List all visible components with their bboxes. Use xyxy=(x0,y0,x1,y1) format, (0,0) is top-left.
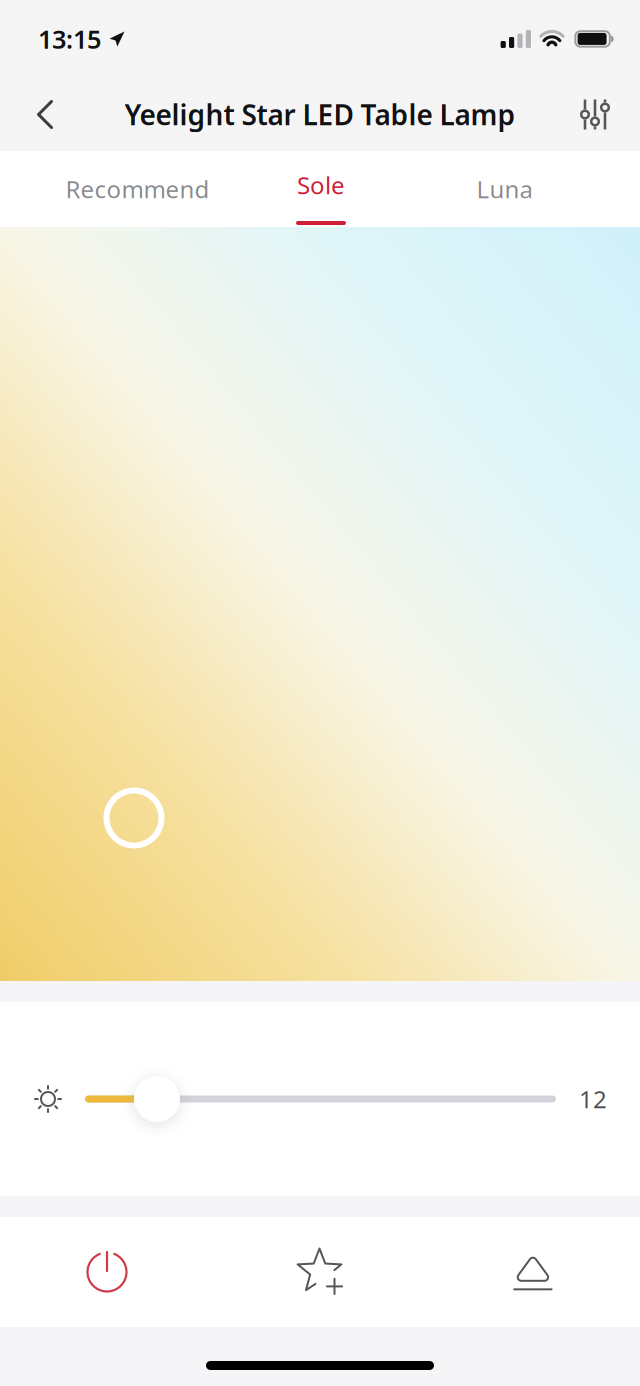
staticText: Luna xyxy=(476,173,532,205)
staticText: Yeelight Star LED Table Lamp xyxy=(124,96,515,133)
button[interactable]: More options xyxy=(426,1217,639,1327)
button[interactable]: Power xyxy=(0,1217,213,1327)
button[interactable]: Sole xyxy=(229,151,412,227)
staticText: Sole xyxy=(297,169,345,201)
button[interactable]: Add to favourites xyxy=(213,1217,426,1327)
staticText: 12 xyxy=(579,1083,607,1115)
button[interactable]: Recommend xyxy=(46,151,229,227)
staticText: Recommend xyxy=(65,173,209,205)
button[interactable]: Luna xyxy=(413,151,596,227)
staticText: 13:15 xyxy=(38,22,101,56)
button[interactable]: Settings xyxy=(564,78,626,151)
button[interactable]: Back xyxy=(14,78,76,151)
